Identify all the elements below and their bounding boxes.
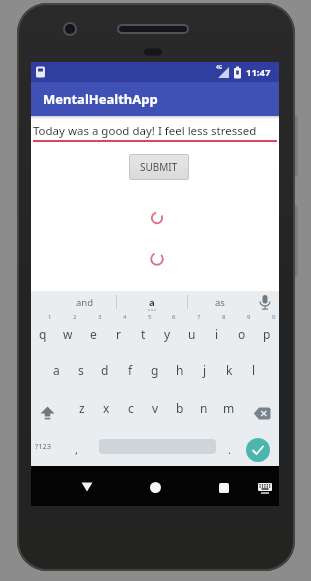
button[interactable]: b [160,398,200,418]
button[interactable]: u [172,324,212,344]
button[interactable]: m [209,398,249,418]
button[interactable]: d [85,360,125,380]
button[interactable]: v [135,398,175,418]
staticText: r [116,326,121,342]
staticText: x [103,400,110,416]
staticText: . [228,442,231,457]
staticText: j [203,362,207,378]
button[interactable]: , [56,439,96,459]
button[interactable] [150,482,161,493]
staticText: as [215,296,225,309]
button[interactable]: a [36,360,76,380]
staticText: c [128,400,134,416]
button[interactable]: j [185,360,225,380]
button[interactable] [81,482,93,492]
button[interactable]: i [197,324,237,344]
staticText: 11:47 [246,66,271,79]
button[interactable]: e [73,324,113,344]
staticText: 6 [172,313,176,321]
staticText: y [164,326,171,342]
button[interactable] [258,483,272,494]
staticText: a [53,362,60,378]
button[interactable]: t [123,324,163,344]
staticText: u [188,326,196,342]
staticText: 3 [98,313,102,321]
button[interactable]: h [160,360,200,380]
staticText: q [39,326,47,342]
staticText: , [75,442,78,457]
staticText: MentalHealthApp [43,90,158,108]
button[interactable] [246,438,270,462]
button[interactable]: s [61,360,101,380]
button[interactable] [219,483,229,493]
staticText: z [79,400,85,416]
button[interactable]: y [147,324,187,344]
staticText: 2 [73,313,77,321]
staticText: ?123 [35,441,52,451]
staticText: 4G [216,64,223,71]
button[interactable]: p [247,324,287,344]
staticText: d [101,362,109,378]
staticText: f [128,362,133,378]
staticText: o [238,326,246,342]
staticText: Today was a good day! I feel less stress… [33,123,257,139]
button[interactable]: . [209,439,249,459]
staticText: n [200,400,208,416]
button[interactable]: x [86,398,126,418]
staticText: e [90,326,97,342]
staticText: a [149,296,155,309]
button[interactable]: Today was a good day! I feel less stress… [33,120,277,142]
button[interactable]: l [234,360,274,380]
button[interactable]: w [48,324,88,344]
staticText: w [63,326,73,342]
button[interactable]: q [23,324,63,344]
staticText: t [141,326,146,342]
button[interactable]: z [62,398,102,418]
staticText: g [151,362,159,378]
button[interactable]: as [200,292,240,312]
staticText: 7 [197,313,201,321]
staticText: 5 [148,313,152,321]
staticText: 4 [123,313,127,321]
staticText: 0 [272,313,276,321]
button[interactable]: c [111,398,151,418]
button[interactable]: o [222,324,262,344]
staticText: k [226,362,233,378]
staticText: v [152,400,159,416]
staticText: b [176,400,184,416]
staticText: l [252,362,256,378]
staticText: 1 [48,313,52,321]
button[interactable]: n [184,398,224,418]
staticText: s [78,362,84,378]
button[interactable]: k [209,360,249,380]
button[interactable]: a [132,292,172,312]
staticText: p [263,326,271,342]
staticText: i [215,326,219,342]
button[interactable] [40,406,56,420]
button[interactable]: ?123 [29,436,57,456]
staticText: and [76,296,94,309]
staticText: h [176,362,184,378]
button[interactable]: and [65,292,105,312]
staticText: SUBMIT [140,160,178,174]
staticText: 9 [247,313,251,321]
button[interactable]: SUBMIT [129,154,189,180]
staticText: m [223,400,235,416]
button[interactable]: f [110,360,150,380]
staticText: 8 [222,313,226,321]
button[interactable] [253,407,271,420]
button[interactable]: r [98,324,138,344]
button[interactable]: g [135,360,175,380]
